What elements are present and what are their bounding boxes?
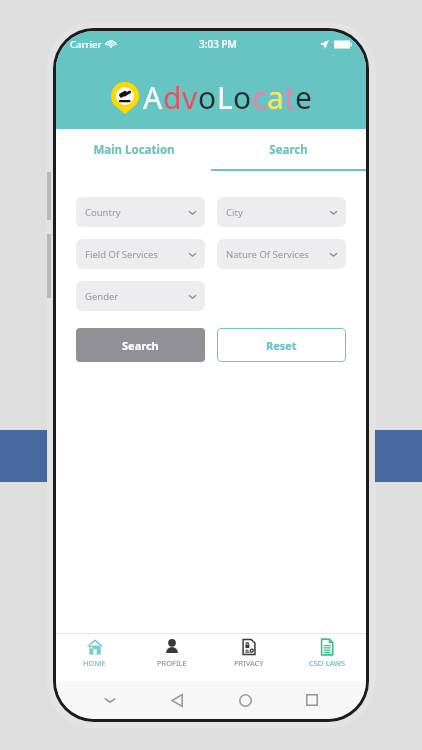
staticText: t: [284, 77, 295, 118]
staticText: d: [163, 77, 182, 118]
staticText: City: [226, 206, 243, 219]
staticText: PRIVACY: [234, 658, 264, 668]
button[interactable]: Search: [76, 328, 205, 362]
button[interactable]: Recent apps: [299, 687, 325, 713]
staticText: Search: [122, 338, 159, 353]
staticText: v: [182, 77, 198, 118]
staticText: HOME: [83, 658, 106, 668]
button[interactable]: Back: [164, 687, 190, 713]
staticText: CSO LAWS: [309, 658, 346, 668]
button[interactable]: PROFILE: [133, 638, 210, 681]
button[interactable]: Main Location: [56, 129, 211, 171]
staticText: PROFILE: [157, 658, 187, 668]
button[interactable]: CSO LAWS: [288, 638, 366, 681]
button[interactable]: PRIVACY: [210, 638, 288, 681]
staticText: Field Of Services: [85, 248, 158, 261]
button[interactable]: HOME: [56, 638, 133, 681]
button[interactable]: Nature Of Services: [217, 239, 346, 269]
staticText: Main Location: [93, 142, 175, 158]
button[interactable]: Home: [232, 687, 258, 713]
staticText: Nature Of Services: [226, 248, 309, 261]
staticText: e: [295, 77, 312, 118]
button[interactable]: Search: [211, 129, 366, 171]
staticText: o: [198, 77, 217, 118]
staticText: Carrier: [70, 38, 102, 51]
button[interactable]: City: [217, 197, 346, 227]
staticText: Search: [269, 142, 308, 158]
staticText: c: [252, 77, 267, 118]
staticText: a: [267, 77, 284, 118]
button[interactable]: Country: [76, 197, 205, 227]
button[interactable]: Reset: [217, 328, 346, 362]
staticText: A: [143, 77, 163, 118]
staticText: L: [217, 77, 233, 118]
staticText: 3:03 PM: [199, 37, 237, 51]
staticText: Reset: [266, 338, 297, 353]
staticText: Country: [85, 206, 121, 219]
button[interactable]: Gender: [76, 281, 205, 311]
button[interactable]: Field Of Services: [76, 239, 205, 269]
staticText: o: [233, 77, 252, 118]
staticText: Gender: [85, 290, 119, 303]
button[interactable]: Hide keyboard: [97, 687, 123, 713]
